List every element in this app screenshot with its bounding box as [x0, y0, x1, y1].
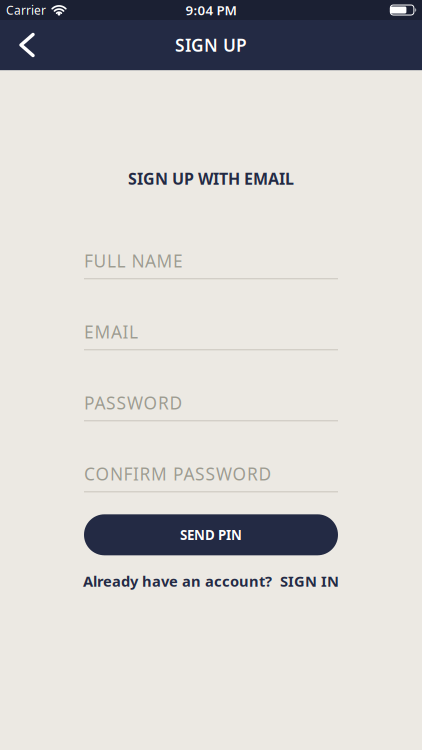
staticText: Carrier [6, 2, 46, 18]
textField[interactable]: EMAIL [84, 320, 338, 343]
staticText: PASSWORD [84, 391, 182, 414]
textField[interactable]: PASSWORD [84, 391, 338, 414]
button[interactable]: Already have an account? [83, 555, 339, 591]
staticText: FULL NAME [84, 249, 183, 272]
staticText: EMAIL [84, 320, 138, 343]
button[interactable]: Back [0, 20, 49, 70]
textField[interactable]: CONFIRM PASSWORD [84, 462, 338, 485]
button[interactable]: SEND PIN [84, 514, 338, 555]
staticText: CONFIRM PASSWORD [84, 462, 271, 485]
staticText: SEND PIN [180, 526, 242, 544]
textField[interactable]: FULL NAME [84, 249, 338, 272]
staticText: Already have an account? [83, 571, 272, 591]
staticText: SIGN UP [175, 33, 247, 56]
staticText: SIGN UP WITH EMAIL [128, 168, 294, 189]
staticText: 9:04 PM [185, 1, 236, 19]
staticText: SIGN IN [280, 571, 339, 591]
